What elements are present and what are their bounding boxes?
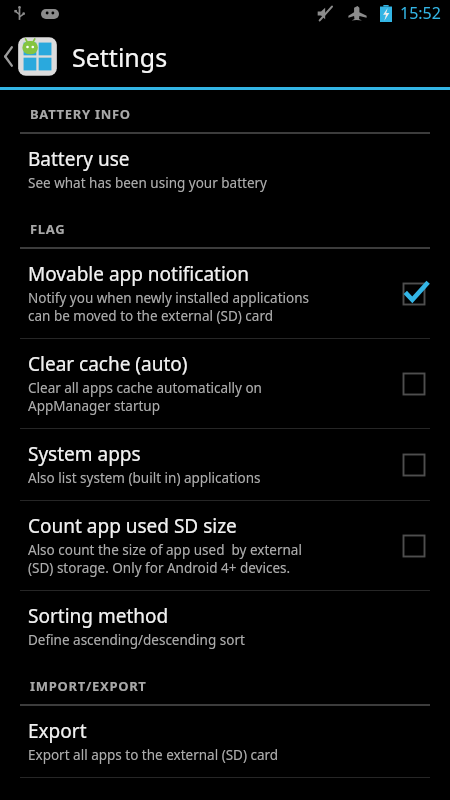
staticText: System apps bbox=[28, 441, 141, 467]
staticText: BATTERY INFO bbox=[30, 105, 131, 123]
staticText: Clear cache (auto) bbox=[28, 351, 188, 377]
staticText: Notify you when newly installed applicat… bbox=[28, 289, 309, 325]
button[interactable]: System apps bbox=[0, 429, 450, 500]
staticText: Clear all apps cache automatically on Ap… bbox=[28, 379, 262, 415]
staticText: IMPORT/EXPORT bbox=[30, 677, 147, 695]
staticText: Also count the size of app used by exter… bbox=[28, 541, 302, 577]
staticText: Battery use bbox=[28, 146, 130, 172]
button[interactable]: Battery use bbox=[0, 134, 450, 205]
button[interactable]: Clear cache (auto) bbox=[0, 339, 450, 428]
staticText: Sorting method bbox=[28, 603, 169, 629]
button[interactable]: Count app used SD size bbox=[378, 522, 450, 570]
button[interactable]: Clear cache (auto) bbox=[378, 360, 450, 408]
staticText: Define ascending/descending sort bbox=[28, 631, 245, 649]
button[interactable]: Sorting method bbox=[0, 591, 450, 662]
button[interactable]: Movable app notification bbox=[378, 270, 450, 318]
button[interactable]: Export bbox=[0, 706, 450, 777]
staticText: 15:52 bbox=[400, 2, 441, 24]
staticText: Settings bbox=[72, 40, 168, 74]
staticText: Export bbox=[28, 718, 87, 744]
staticText: Export all apps to the external (SD) car… bbox=[28, 746, 279, 764]
button[interactable]: System apps bbox=[378, 441, 450, 489]
staticText: Count app used SD size bbox=[28, 513, 237, 539]
staticText: FLAG bbox=[30, 220, 66, 238]
button[interactable]: Count app used SD size bbox=[0, 501, 450, 590]
staticText: See what has been using your battery bbox=[28, 174, 267, 192]
staticText: Movable app notification bbox=[28, 261, 250, 287]
button[interactable]: Movable app notification bbox=[0, 249, 450, 338]
button[interactable]: Navigate up bbox=[0, 26, 450, 87]
staticText: Also list system (built in) applications bbox=[28, 469, 261, 487]
